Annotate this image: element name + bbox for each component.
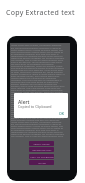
staticText: COPY TO CLIPBOARD <box>30 155 54 158</box>
staticText: Alert <box>18 99 30 106</box>
staticText: Lorem ipsum dolor sit amet, consectetur … <box>11 44 65 137</box>
staticText: SELECT IMAGE <box>33 142 50 145</box>
button[interactable]: COPY TO CLIPBOARD <box>29 154 54 159</box>
staticText: Copy Extracted text <box>6 8 75 18</box>
staticText: OK <box>59 111 65 116</box>
button[interactable]: SELECT IMAGE <box>29 141 54 146</box>
button[interactable]: SHARE <box>29 160 54 165</box>
button[interactable]: RECOGNISE TEXT <box>29 147 54 152</box>
staticText: Copied to Clipboard <box>18 104 52 109</box>
staticText: RECOGNISE TEXT <box>32 148 52 151</box>
button[interactable]: OK <box>58 111 66 116</box>
staticText: SHARE <box>38 161 46 164</box>
